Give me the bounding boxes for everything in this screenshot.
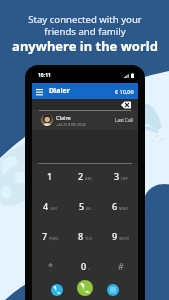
staticText: Dialer — [49, 86, 70, 96]
button[interactable]: Call — [77, 280, 93, 296]
button[interactable]: 5 — [68, 191, 103, 221]
staticText: 6 — [112, 200, 118, 212]
staticText: 3 — [114, 170, 120, 182]
button[interactable]: 2 — [68, 161, 103, 191]
button[interactable]: 6 — [103, 191, 138, 221]
button[interactable]: Video call — [51, 284, 63, 296]
staticText: PQRS — [49, 236, 59, 241]
button[interactable]: Backspace — [121, 101, 131, 109]
staticText: GHI — [50, 206, 57, 211]
staticText: 4 — [43, 200, 49, 212]
staticText: 7 — [42, 230, 48, 242]
button[interactable]: # — [103, 251, 138, 281]
button[interactable]: Menu — [33, 85, 46, 98]
button[interactable]: * — [32, 251, 68, 281]
staticText: 1 — [47, 170, 53, 182]
staticText: Last Call — [115, 117, 133, 123]
staticText: 10:11 — [38, 72, 51, 79]
button[interactable]: 9 — [103, 221, 138, 251]
staticText: # — [118, 260, 124, 272]
staticText: ABC — [85, 176, 93, 181]
staticText: 0 — [81, 260, 87, 272]
staticText: DEF — [121, 176, 128, 181]
staticText: € 10,00 — [115, 88, 134, 95]
button[interactable]: 8 — [68, 221, 103, 251]
staticText: +44 20 8180 2028 — [56, 122, 86, 127]
staticText: 5 — [79, 200, 85, 212]
staticText: TUV — [85, 236, 93, 241]
button[interactable]: 4 — [32, 191, 68, 221]
staticText: WXYZ — [119, 236, 130, 241]
button[interactable]: Claire — [32, 110, 138, 130]
staticText: 2 — [78, 170, 84, 182]
button[interactable]: Keypad — [107, 284, 119, 296]
staticText: MNO — [119, 206, 129, 211]
button[interactable]: 3 — [103, 161, 138, 191]
staticText: JKL — [86, 206, 92, 211]
button[interactable]: 7 — [32, 221, 68, 251]
button[interactable]: 0 — [68, 251, 103, 281]
staticText: 9 — [112, 230, 118, 242]
staticText: Stay connected with your friends and fam… — [28, 13, 142, 37]
staticText: Claire — [56, 114, 71, 121]
staticText: 8 — [78, 230, 84, 242]
staticText: + — [88, 266, 91, 271]
button[interactable]: 1 — [32, 161, 68, 191]
staticText: anywhere in the world — [12, 37, 158, 55]
staticText: * — [48, 260, 53, 272]
